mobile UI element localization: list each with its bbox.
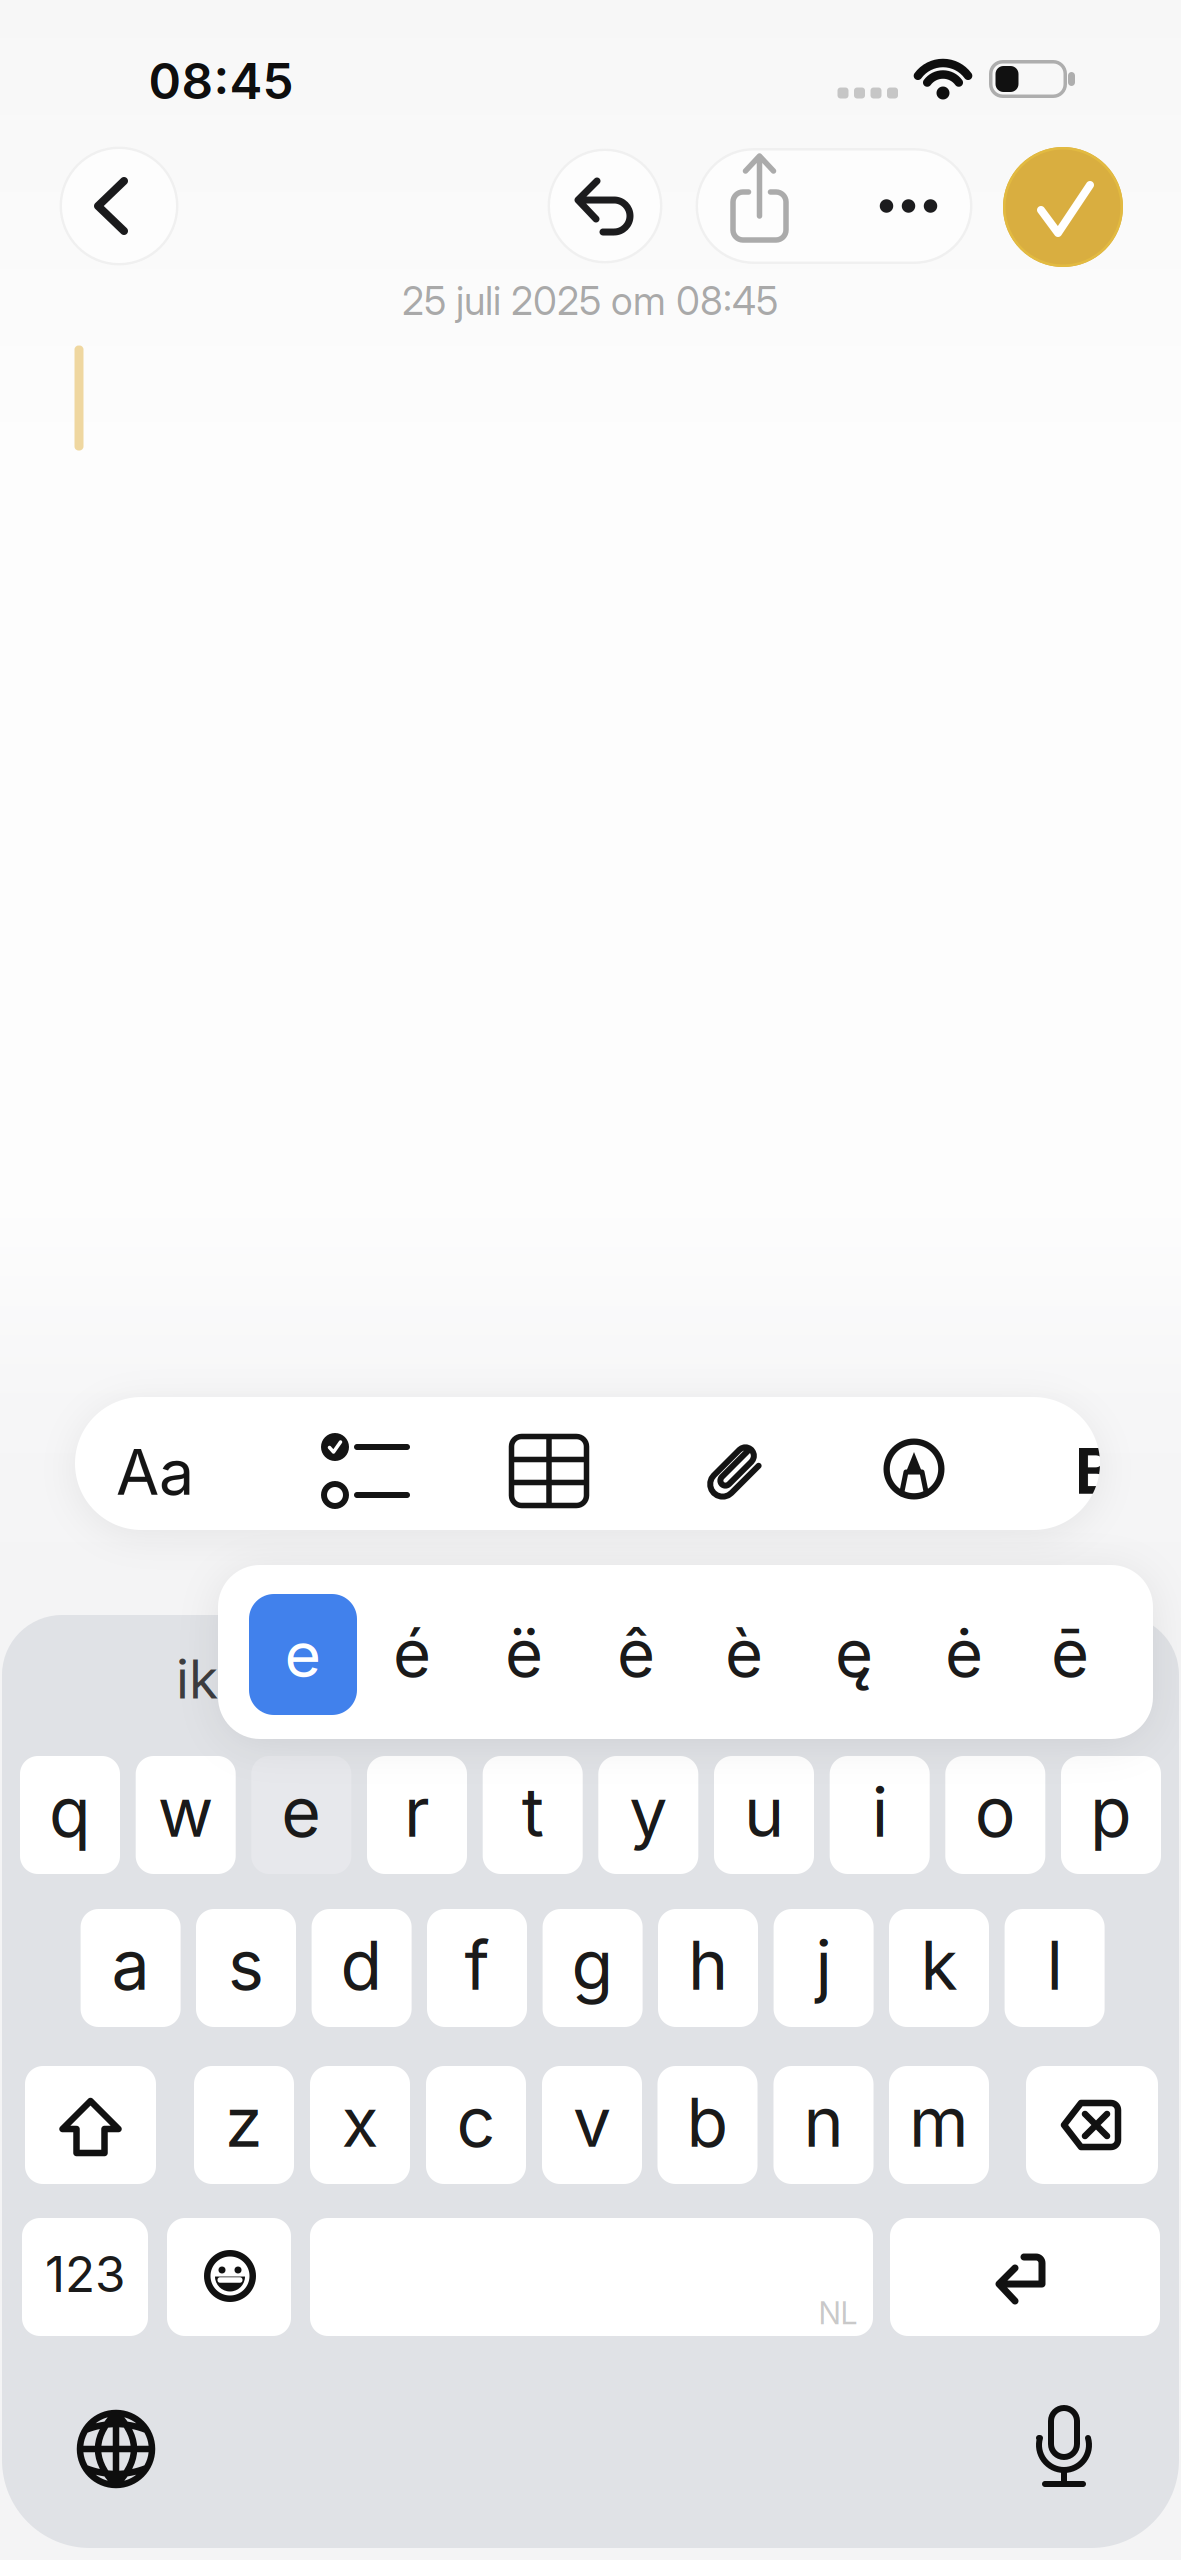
staticText: b	[686, 2082, 728, 2162]
button[interactable]: NL	[310, 2218, 873, 2336]
button[interactable]: ė	[914, 1578, 1014, 1728]
button[interactable]	[1026, 2066, 1158, 2184]
button[interactable]: o	[945, 1756, 1045, 1874]
button[interactable]: r	[367, 1756, 467, 1874]
button[interactable]	[853, 151, 963, 261]
button[interactable]: h	[658, 1909, 758, 2027]
staticText: NL	[818, 2295, 857, 2331]
button[interactable]: g	[543, 1909, 643, 2027]
button[interactable]	[859, 1410, 969, 1530]
staticText: k	[920, 1925, 957, 2005]
button[interactable]: ik	[77, 1624, 317, 1734]
button[interactable]: i	[830, 1756, 930, 1874]
button[interactable]: m	[889, 2066, 989, 2184]
button[interactable]	[890, 2218, 1160, 2336]
button[interactable]: B	[1055, 1411, 1135, 1531]
button[interactable]: 123	[22, 2218, 148, 2336]
button[interactable]: Aa	[90, 1412, 220, 1532]
staticText: ê	[617, 1614, 655, 1692]
staticText: B	[1074, 1434, 1115, 1508]
button[interactable]	[25, 2066, 156, 2184]
staticText: v	[573, 2082, 611, 2162]
button[interactable]: d	[312, 1909, 412, 2027]
staticText: y	[629, 1772, 667, 1852]
button[interactable]: ë	[474, 1578, 574, 1728]
staticText: e	[284, 1617, 321, 1691]
staticText: g	[572, 1925, 614, 2005]
staticText: Aa	[116, 1435, 194, 1509]
staticText: w	[158, 1772, 214, 1852]
button[interactable]: n	[773, 2066, 873, 2184]
staticText: p	[1090, 1772, 1132, 1852]
button[interactable]: e	[249, 1594, 357, 1715]
staticText: d	[341, 1925, 383, 2005]
staticText: è	[725, 1614, 763, 1692]
staticText: f	[464, 1925, 489, 2005]
button[interactable]: p	[1061, 1756, 1161, 1874]
staticText: c	[456, 2082, 495, 2162]
button[interactable]: y	[598, 1756, 698, 1874]
button[interactable]: l	[1005, 1909, 1105, 2027]
staticText: é	[393, 1614, 431, 1692]
staticText: t	[522, 1772, 544, 1852]
button[interactable]	[167, 2218, 291, 2336]
staticText: s	[228, 1925, 264, 2005]
staticText: m	[909, 2082, 969, 2162]
button[interactable]: t	[483, 1756, 583, 1874]
button[interactable]: ę	[804, 1578, 904, 1728]
button[interactable]: c	[426, 2066, 526, 2184]
button[interactable]	[680, 1411, 790, 1531]
button[interactable]: z	[194, 2066, 294, 2184]
button[interactable]: è	[694, 1578, 794, 1728]
staticText: i	[872, 1772, 888, 1852]
staticText: 25 juli 2025 om 08:45	[402, 278, 778, 324]
staticText: q	[49, 1772, 91, 1852]
staticText: ë	[505, 1614, 543, 1692]
button[interactable]: k	[889, 1909, 989, 2027]
staticText: 123	[45, 2245, 125, 2303]
staticText: n	[803, 2082, 843, 2162]
staticText: x	[341, 2082, 378, 2162]
button[interactable]	[59, 146, 178, 265]
button[interactable]: ê	[586, 1578, 686, 1728]
button[interactable]: v	[542, 2066, 642, 2184]
button[interactable]: b	[657, 2066, 757, 2184]
button[interactable]: é	[362, 1578, 462, 1728]
button[interactable]: a	[81, 1909, 181, 2027]
button[interactable]: u	[714, 1756, 814, 1874]
staticText: h	[688, 1925, 728, 2005]
button[interactable]: ē	[1020, 1578, 1120, 1728]
button[interactable]	[297, 1411, 427, 1531]
staticText: r	[404, 1772, 430, 1852]
staticText: a	[112, 1925, 150, 2005]
button[interactable]	[71, 2404, 161, 2494]
button[interactable]: j	[774, 1909, 874, 2027]
staticText: ē	[1051, 1614, 1089, 1692]
button[interactable]: q	[20, 1756, 120, 1874]
staticText: ė	[945, 1614, 983, 1692]
button[interactable]: e	[251, 1756, 351, 1874]
staticText: u	[744, 1772, 784, 1852]
staticText: ik	[176, 1647, 218, 1710]
button[interactable]	[709, 151, 809, 261]
button[interactable]: x	[310, 2066, 410, 2184]
staticText: ę	[835, 1614, 873, 1692]
staticText: e	[281, 1772, 321, 1852]
button[interactable]: f	[427, 1909, 527, 2027]
button[interactable]: w	[136, 1756, 236, 1874]
button[interactable]	[1009, 2391, 1119, 2501]
staticText: z	[225, 2082, 263, 2162]
staticText: j	[816, 1925, 832, 2005]
staticText: 08:45	[148, 52, 293, 110]
button[interactable]	[547, 148, 662, 263]
staticText: o	[975, 1772, 1016, 1852]
staticText: l	[1047, 1925, 1063, 2005]
button[interactable]	[484, 1411, 614, 1531]
button[interactable]	[1003, 147, 1123, 267]
button[interactable]: s	[196, 1909, 296, 2027]
